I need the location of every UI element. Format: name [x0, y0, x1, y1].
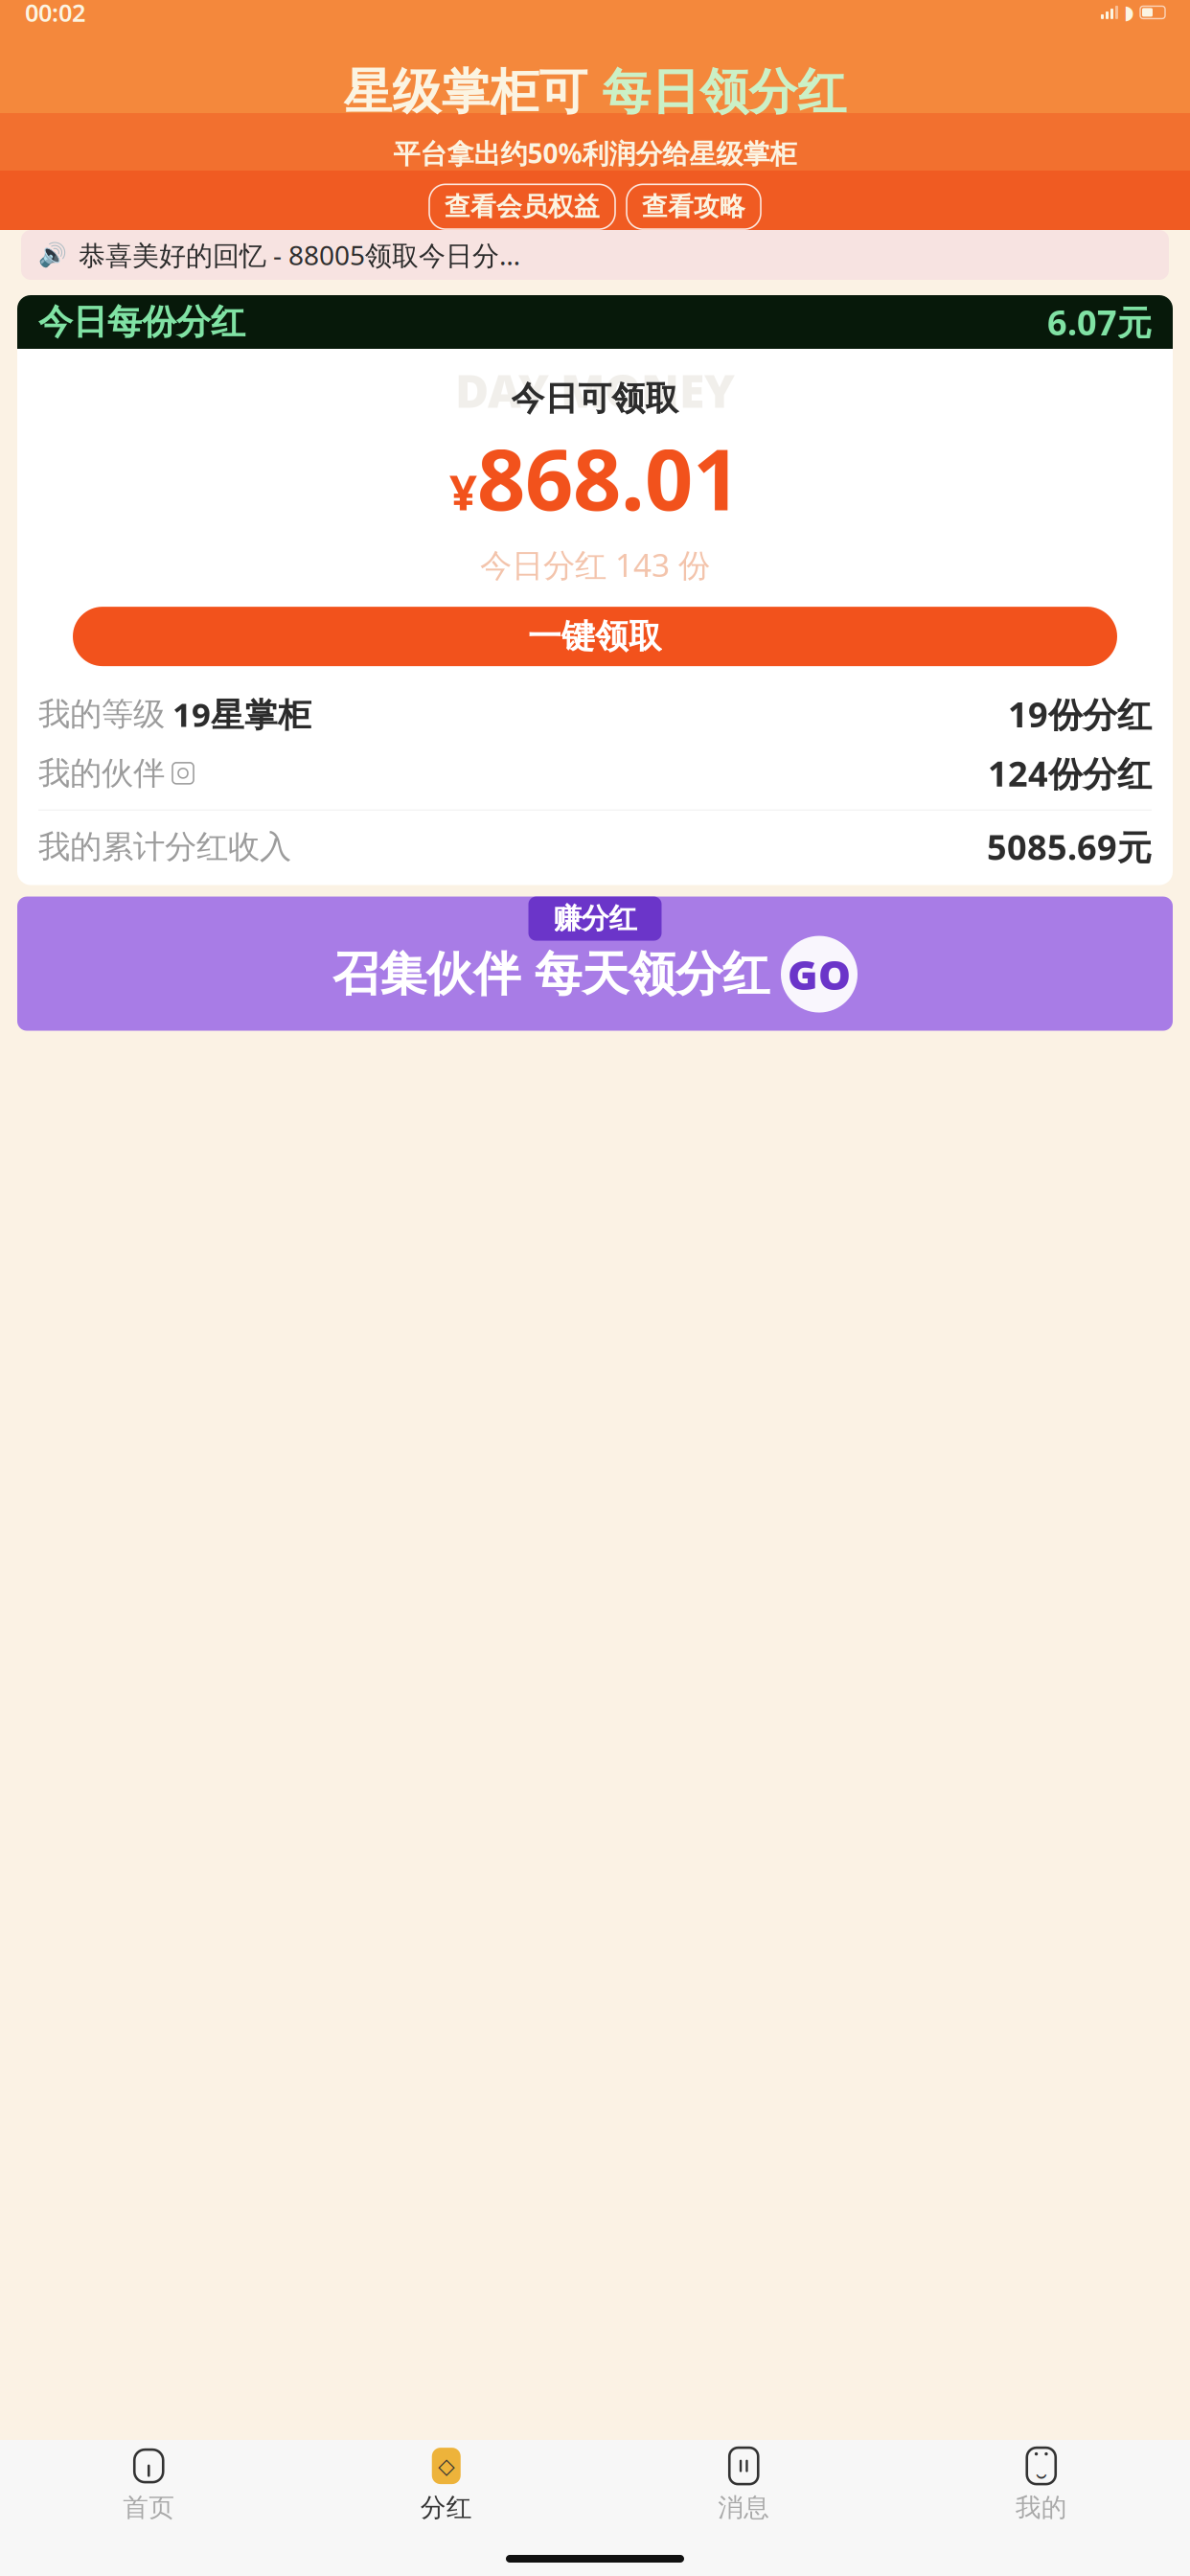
staticText: 分红	[420, 2492, 472, 2523]
button[interactable]: 查看攻略	[627, 184, 761, 229]
button[interactable]: 赚分红	[0, 897, 1190, 1031]
staticText: 首页	[123, 2492, 175, 2523]
staticText: 我的	[1015, 2492, 1067, 2523]
staticText: 恭喜美好的回忆 - 88005领取今日分…	[79, 237, 520, 273]
staticText: 今日每份分红	[38, 301, 245, 343]
staticText: GO	[788, 947, 851, 1001]
staticText: ‿	[1036, 2457, 1046, 2479]
staticText: 19星掌柜	[172, 692, 311, 736]
staticText: DAY MONEY	[455, 359, 735, 421]
staticText: 我的伙伴	[38, 754, 165, 793]
button[interactable]: ‿	[892, 2447, 1190, 2523]
button[interactable]: 查看会员权益	[429, 184, 615, 229]
staticText: 6.07元	[1047, 299, 1152, 345]
staticText: 今日分红 143 份	[480, 543, 710, 586]
button[interactable]: 🔊	[0, 230, 1190, 280]
staticText: 平台拿出约50%利润分给星级掌柜	[393, 135, 797, 171]
button[interactable]: 一键领取	[73, 607, 1117, 666]
staticText: 00:02	[25, 0, 85, 28]
staticText: ¥	[449, 459, 477, 524]
staticText: 查看攻略	[642, 191, 745, 222]
staticText: 我的等级	[38, 694, 165, 734]
staticText: 19份分红	[1008, 691, 1152, 737]
staticText: 我的累计分红收入	[38, 827, 291, 866]
staticText: 消息	[718, 2492, 770, 2523]
staticText: ◗	[1124, 2, 1134, 23]
staticText: 一键领取	[528, 616, 662, 657]
button[interactable]: 我的等级	[17, 691, 1173, 737]
staticText: 星级掌柜可	[343, 62, 602, 122]
button[interactable]: 消息	[595, 2447, 892, 2523]
staticText: 查看会员权益	[445, 191, 600, 222]
staticText: 🔊	[38, 242, 67, 268]
button[interactable]: ◇	[297, 2447, 595, 2523]
staticText: 5085.69元	[987, 824, 1152, 870]
staticText: 今日可领取	[511, 378, 679, 419]
staticText: 124份分红	[988, 750, 1152, 796]
staticText: 召集伙伴 每天领分红	[332, 945, 769, 1003]
staticText: ◇	[438, 2454, 454, 2478]
button[interactable]: 首页	[0, 2447, 297, 2523]
staticText: 每日领分红	[602, 62, 847, 122]
button[interactable]: 我的伙伴	[17, 750, 1173, 796]
staticText: 868.01	[477, 422, 741, 534]
staticText: 赚分红	[553, 901, 637, 936]
